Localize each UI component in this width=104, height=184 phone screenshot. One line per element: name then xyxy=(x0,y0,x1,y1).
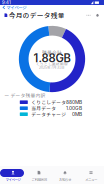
staticText: 今月のデータ残量 xyxy=(9,10,65,20)
staticText: くりこしデータ xyxy=(31,99,66,106)
staticText: マイページ xyxy=(6,4,26,11)
staticText: 880MB xyxy=(66,99,82,105)
button[interactable]: ご利用状況 xyxy=(0,0,26,184)
staticText: 残量合計 xyxy=(42,49,62,56)
staticText: ー データ残量内訳 xyxy=(4,92,45,99)
staticText: 0MB xyxy=(72,111,82,117)
staticText: 当月データ xyxy=(31,105,56,112)
button[interactable]: マイページ xyxy=(0,0,26,184)
staticText: マイページ xyxy=(5,177,20,182)
staticText: 2025年7月31日 xyxy=(39,64,65,70)
staticText: データチャージ xyxy=(31,111,66,118)
button[interactable]: お知らせ xyxy=(93,11,101,19)
button[interactable]: メニュー xyxy=(0,0,26,184)
button[interactable]: お知らせ xyxy=(0,0,26,184)
button[interactable]: マイページ xyxy=(0,4,52,10)
button[interactable]: その他 xyxy=(84,11,92,19)
staticText: メニュー xyxy=(85,177,97,182)
staticText: くりこし最終期限 xyxy=(36,61,68,66)
staticText: 1.00GB xyxy=(66,105,82,111)
staticText: 1.88GB xyxy=(33,51,70,65)
staticText: お知らせ xyxy=(59,177,71,182)
staticText: 9:41 xyxy=(2,0,11,5)
staticText: ご利用状況 xyxy=(31,177,46,182)
